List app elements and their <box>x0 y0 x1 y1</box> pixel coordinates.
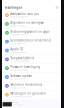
staticText: Weergave, gehoor, bediening <box>10 60 30 62</box>
button[interactable]: Beeldscherm en helderheid <box>2 37 61 46</box>
staticText: Tekstgrootte, nachtshift <box>10 43 25 45</box>
staticText: Aanbevolen voor jou <box>10 12 39 16</box>
staticText: Info, software-update, taal <box>10 25 25 27</box>
button[interactable]: Aanbevolen voor jou <box>2 11 61 19</box>
button[interactable]: Software-update <box>2 73 61 81</box>
staticText: Locatie, tracking, beveiliging <box>10 69 28 71</box>
staticText: Updates en nieuwe functies <box>10 16 28 18</box>
staticText: Scherm en helderheid <box>10 83 42 86</box>
staticText: Toegankelijkheid <box>10 56 34 60</box>
staticText: Bedieningspaneel en apps <box>10 30 49 33</box>
button[interactable]: Algemeen en weergave <box>2 20 61 28</box>
button[interactable]: Bedieningspaneel en apps <box>2 28 61 37</box>
staticText: Bedien <box>13 102 18 103</box>
button[interactable]: Privacy en beveiliging <box>2 64 61 72</box>
staticText: Programma's <box>13 104 23 106</box>
staticText: 9:41 <box>5 1 8 3</box>
button[interactable]: Account <box>55 6 58 9</box>
button[interactable]: Apple ID <box>2 46 61 55</box>
staticText: Software-update <box>10 74 32 78</box>
button[interactable]: Scherm en helderheid <box>2 82 61 90</box>
button[interactable]: Toegankelijkheid <box>2 55 61 64</box>
button[interactable]: Meldingen en geluiden <box>2 90 61 99</box>
staticText: Snelle instellingen beheren <box>10 34 28 36</box>
staticText: Programma's, badges, banners <box>10 96 33 98</box>
staticText: iCloud, media en aankopen <box>10 52 28 53</box>
staticText: Automatisch, nachtshift <box>10 87 24 89</box>
staticText: Apple ID <box>10 48 23 51</box>
staticText: Instellingen <box>5 6 23 9</box>
staticText: Privacy en beveiliging <box>10 65 40 69</box>
staticText: Meldingen en geluiden <box>10 92 46 95</box>
staticText: Beeldscherm en helderheid <box>10 39 51 42</box>
staticText: Algemeen en weergave <box>10 21 44 24</box>
